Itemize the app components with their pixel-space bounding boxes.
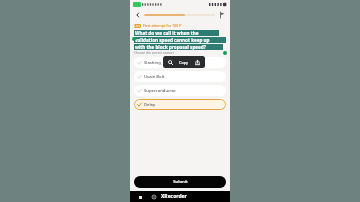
staticText: Superconductor	[144, 88, 177, 94]
staticText: What do we call it when the	[135, 30, 199, 36]
button[interactable]: Back	[133, 10, 143, 20]
staticText: Delay	[144, 102, 156, 108]
button[interactable]: Recents	[136, 193, 144, 201]
button[interactable]: Slashing	[134, 57, 226, 68]
button[interactable]: Usain Bolt	[134, 71, 226, 82]
staticText: XRecorder	[161, 193, 187, 200]
staticText: with the block proposal speed?	[135, 44, 206, 50]
button[interactable]: Home	[150, 193, 158, 201]
staticText: First attempt for 100 P	[143, 23, 182, 28]
button[interactable]: Copy	[178, 60, 190, 65]
button[interactable]: Share	[193, 58, 202, 67]
staticText: Slashing	[144, 60, 161, 66]
staticText: Choose the correct answer	[134, 51, 174, 55]
button[interactable]: Report a problem	[217, 10, 227, 20]
button[interactable]: Superconductor	[134, 85, 226, 96]
button[interactable]: Delay	[134, 99, 226, 110]
staticText: Submit	[173, 179, 188, 185]
button[interactable]: Web search	[166, 58, 175, 67]
staticText: validation speed cannot keep up	[135, 37, 210, 43]
staticText: Usain Bolt	[144, 74, 165, 80]
staticText: Copy	[179, 60, 189, 65]
button[interactable]: Submit	[134, 176, 226, 188]
